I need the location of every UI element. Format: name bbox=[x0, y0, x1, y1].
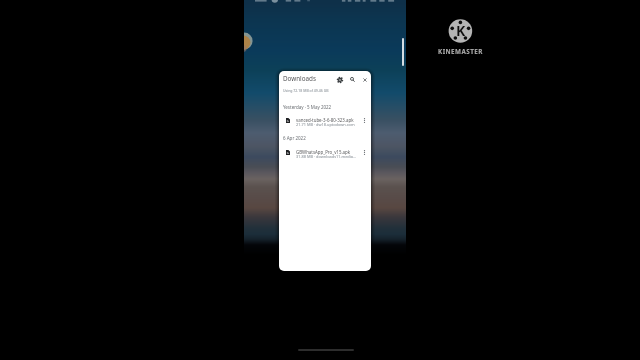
staticText: Yesterday · 5 May 2022 bbox=[283, 104, 332, 110]
staticText: K bbox=[456, 21, 466, 40]
staticText: 6 Apr 2022 bbox=[283, 135, 306, 141]
button[interactable]: More options bbox=[360, 148, 368, 156]
staticText: 21.71 MB · dw18.uptodown.com bbox=[296, 122, 355, 127]
button[interactable]: Close bbox=[360, 75, 369, 84]
staticText: vanced-tube-3-6-80-323.apk bbox=[296, 117, 354, 123]
staticText: Downloads bbox=[283, 74, 316, 83]
staticText: 31.88 MB · downloads11.media… bbox=[296, 154, 356, 159]
staticText: GBWhatsApp_Pro_v15.apk bbox=[296, 149, 351, 155]
button[interactable]: GBWhatsApp_Pro_v15.apk bbox=[279, 146, 371, 160]
staticText: Using 72.18 MB of 49.46 GB bbox=[283, 88, 329, 93]
button[interactable]: More options bbox=[360, 116, 368, 124]
staticText: KINEMASTER bbox=[438, 47, 483, 56]
button[interactable]: Search bbox=[348, 75, 357, 84]
button[interactable]: vanced-tube-3-6-80-323.apk bbox=[279, 114, 371, 128]
button[interactable]: Settings bbox=[335, 75, 344, 84]
